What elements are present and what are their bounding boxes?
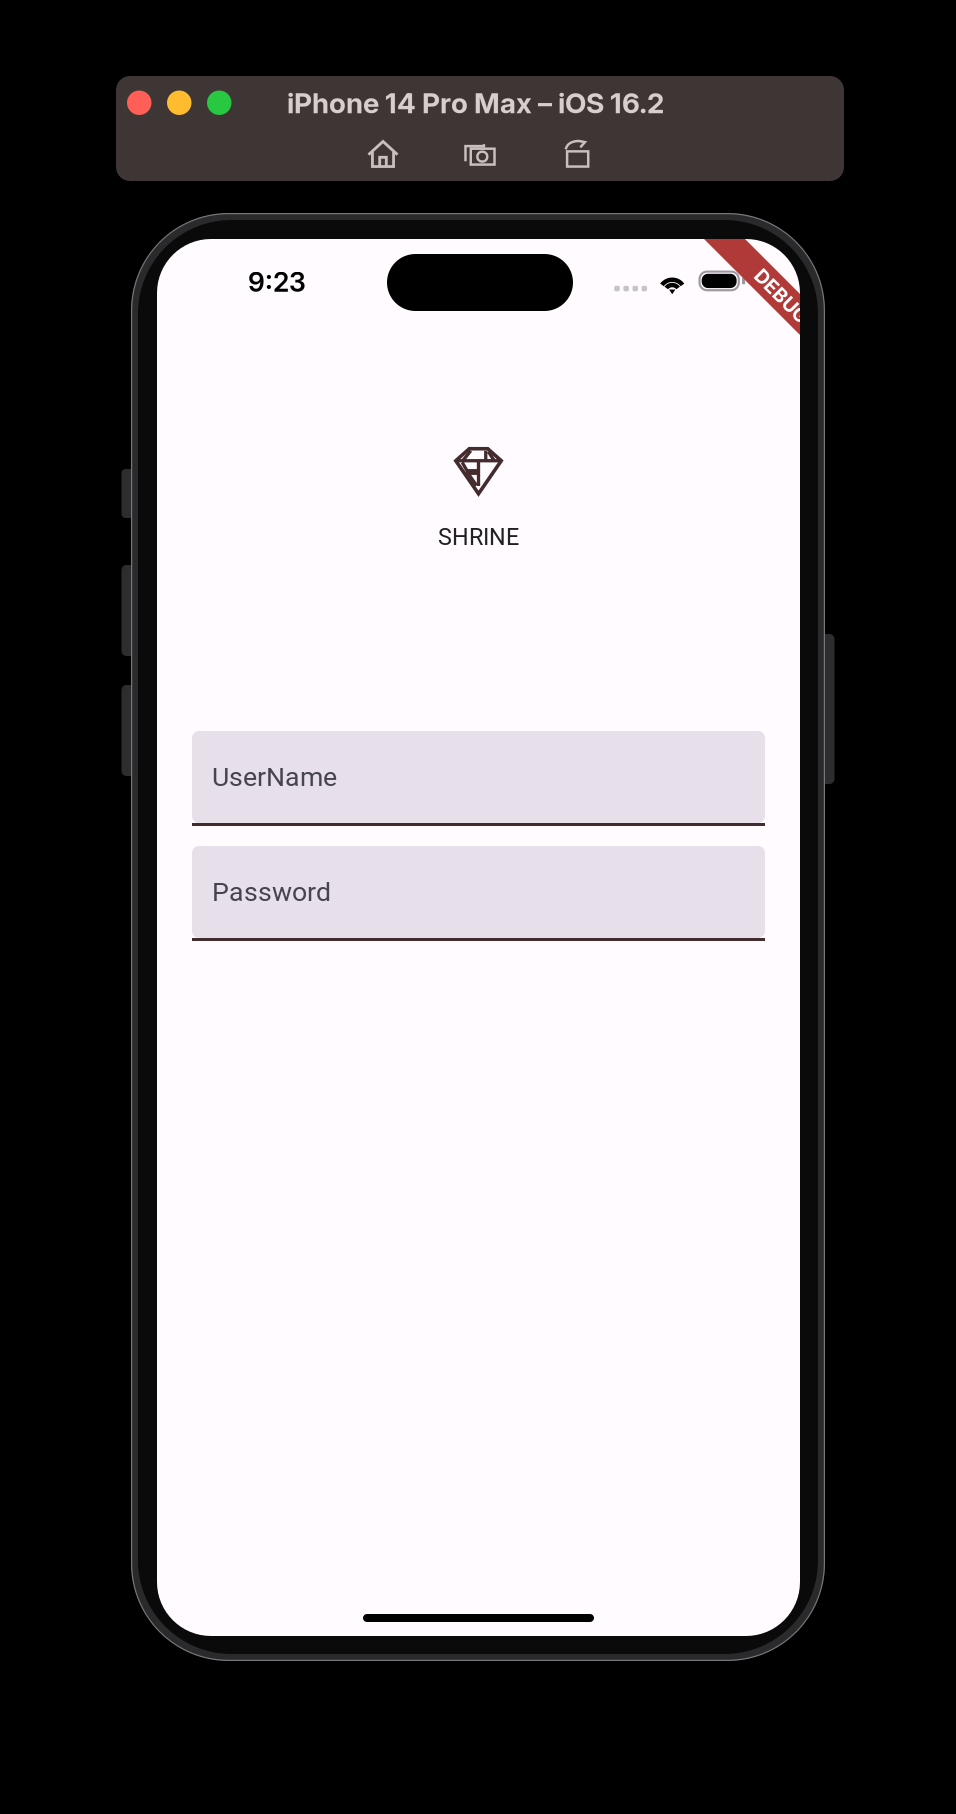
button[interactable]: Rotate [555,134,599,174]
staticText: 9:23 [248,266,306,298]
button[interactable]: Home [361,134,405,174]
staticText: iPhone 14 Pro Max – iOS 16.2 [287,86,664,120]
button[interactable]: UserName [192,731,765,826]
staticText: SHRINE [438,523,519,551]
button[interactable]: Close window [127,90,151,115]
button[interactable]: Password [192,846,765,941]
staticText: Password [212,876,331,908]
staticText: UserName [212,761,337,793]
button[interactable]: Minimise window [167,90,191,115]
button[interactable]: Zoom window [207,90,231,115]
staticText: DEBUG [753,270,821,294]
button[interactable]: Screenshot [458,134,502,174]
